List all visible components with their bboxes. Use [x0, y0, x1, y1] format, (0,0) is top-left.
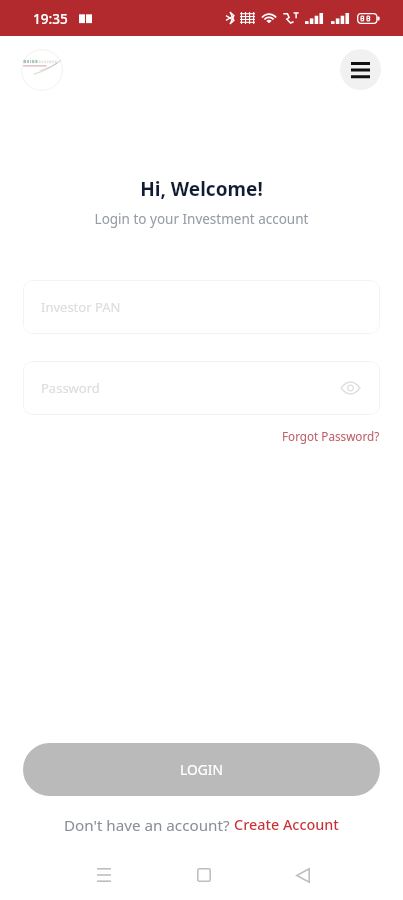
button[interactable]: Home	[180, 851, 228, 899]
staticText: Forgot Password?	[282, 428, 380, 444]
button[interactable]: Menu	[340, 49, 381, 90]
button[interactable]: Investor PAN	[23, 280, 380, 334]
staticText: Don't have an account?	[64, 815, 234, 836]
staticText: Create Account	[234, 815, 339, 835]
staticText: Investor PAN	[41, 298, 121, 316]
button[interactable]: Show password	[337, 375, 363, 401]
button[interactable]: Create Account	[234, 811, 339, 839]
button[interactable]: Recents	[80, 851, 128, 899]
button[interactable]: Password	[23, 361, 380, 415]
button[interactable]: Forgot Password?	[282, 424, 380, 448]
button[interactable]: LOGIN	[23, 743, 380, 796]
staticText: Hi, Welcome!	[0, 176, 403, 202]
staticText: LOGIN	[180, 760, 223, 779]
staticText: Password	[41, 379, 100, 397]
staticText: Login to your Investment account	[0, 210, 403, 228]
button[interactable]: Back	[279, 851, 327, 899]
staticText: 19:35	[33, 9, 68, 28]
